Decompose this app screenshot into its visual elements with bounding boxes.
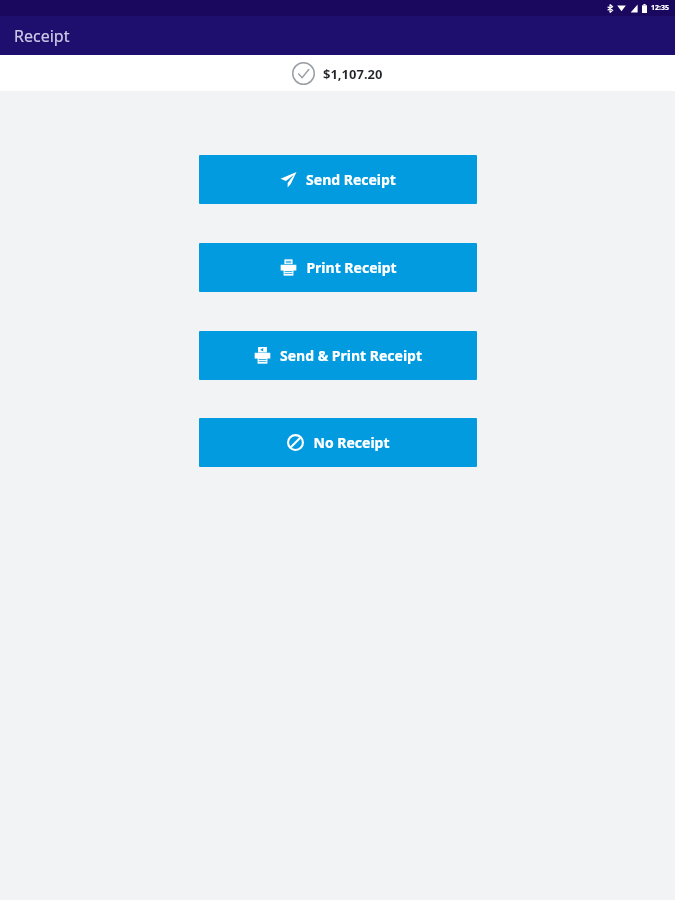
staticText: Print Receipt <box>306 258 397 277</box>
staticText: No Receipt <box>313 433 390 452</box>
staticText: 12:35 <box>651 3 669 13</box>
staticText: Receipt <box>14 25 70 47</box>
button[interactable]: Send & Print Receipt <box>199 331 477 380</box>
button[interactable]: Print Receipt <box>199 243 477 292</box>
staticText: $1,107.20 <box>323 65 383 83</box>
button[interactable]: No Receipt <box>199 418 477 467</box>
button[interactable]: Send Receipt <box>199 155 477 204</box>
staticText: Send & Print Receipt <box>280 346 422 365</box>
staticText: Send Receipt <box>306 170 396 189</box>
